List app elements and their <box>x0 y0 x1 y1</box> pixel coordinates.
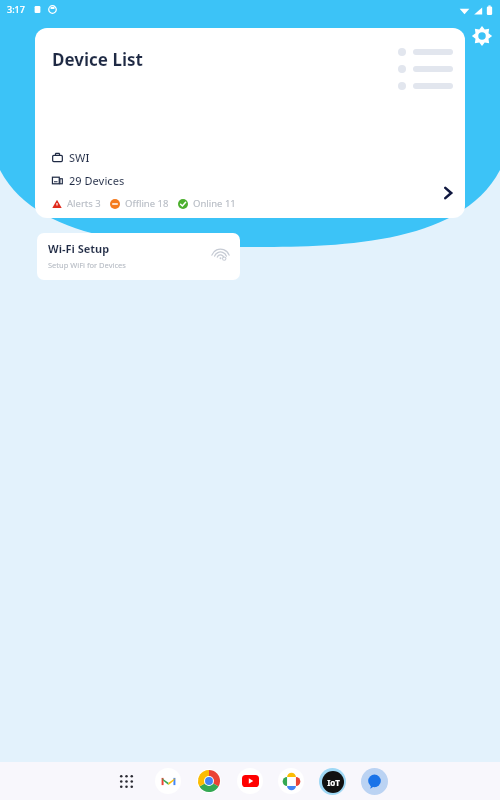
button[interactable]: Settings <box>468 22 496 50</box>
staticText: Online 11 <box>193 197 236 210</box>
staticText: 3:17 <box>7 3 25 15</box>
button[interactable]: Gmail <box>155 768 181 794</box>
staticText: IoT <box>327 777 340 788</box>
staticText: SWI <box>69 150 90 165</box>
staticText: 29 Devices <box>69 173 125 188</box>
staticText: Device List <box>52 48 143 71</box>
button[interactable]: Open device list <box>433 178 463 208</box>
staticText: Wi-Fi Setup <box>48 241 110 256</box>
staticText: Setup WiFi for Devices <box>48 260 126 270</box>
button[interactable]: Google Photos <box>278 768 304 794</box>
button[interactable]: IoT app <box>319 768 346 795</box>
button[interactable]: Chrome <box>196 768 222 794</box>
button[interactable]: Messages <box>361 768 388 795</box>
button[interactable]: Wi-Fi Setup <box>37 233 240 280</box>
button[interactable]: Device List <box>35 28 465 218</box>
staticText: Alerts 3 <box>67 197 101 210</box>
button[interactable]: All apps <box>112 767 140 795</box>
staticText: Offline 18 <box>125 197 169 210</box>
button[interactable]: YouTube <box>237 768 263 794</box>
